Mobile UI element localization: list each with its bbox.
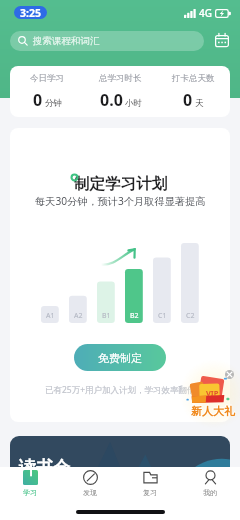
button[interactable]: 我的 (180, 467, 240, 505)
staticText: 搜索课程和词汇 (33, 35, 100, 47)
staticText: 小时 (125, 98, 142, 109)
staticText: 免费制定 (98, 351, 142, 365)
staticText: 新人大礼 (190, 404, 234, 418)
staticText: 0 (183, 89, 193, 111)
staticText: B1 (102, 311, 111, 321)
button[interactable]: 新人大礼 (178, 370, 240, 418)
button[interactable]: Close (225, 370, 234, 379)
staticText: VIP (206, 388, 219, 398)
staticText: 已有25万+用户加入计划，学习效率翻倍 (45, 384, 196, 396)
staticText: C2 (186, 311, 195, 321)
staticText: 3:25 (20, 6, 41, 19)
staticText: A1 (46, 311, 55, 321)
staticText: 新人大礼 (191, 404, 235, 418)
staticText: 每天30分钟，预计3个月取得显著提高 (35, 194, 206, 208)
staticText: C1 (158, 311, 167, 321)
staticText: 总学习时长 (99, 73, 142, 84)
staticText: 我的 (203, 488, 217, 497)
staticText: 分钟 (45, 98, 62, 109)
button[interactable]: 免费制定 (74, 344, 166, 371)
staticText: 学习 (23, 488, 37, 497)
staticText: 0.0 (100, 89, 123, 111)
button[interactable]: 发现 (60, 467, 120, 505)
staticText: B2 (130, 311, 139, 321)
staticText: 新人大礼 (191, 403, 235, 417)
staticText: 天 (195, 98, 204, 109)
staticText: 打卡总天数 (172, 73, 215, 84)
staticText: 4G (199, 6, 212, 20)
button[interactable]: 读书会 (10, 436, 230, 494)
staticText: 新人大礼 (191, 404, 235, 418)
button[interactable]: Calendar (213, 31, 231, 49)
staticText: 读书会 (19, 457, 70, 478)
button[interactable]: 复习 (120, 467, 180, 505)
button[interactable]: 学习 (0, 467, 60, 505)
staticText: 0 (33, 89, 43, 111)
staticText: 新人大礼 (191, 404, 235, 418)
staticText: A2 (74, 311, 83, 321)
button[interactable]: 搜索课程和词汇 (10, 31, 204, 51)
staticText: 制定学习计划 (74, 174, 167, 194)
staticText: 复习 (143, 488, 157, 497)
staticText: 发现 (83, 488, 97, 497)
staticText: 今日学习 (30, 73, 64, 84)
